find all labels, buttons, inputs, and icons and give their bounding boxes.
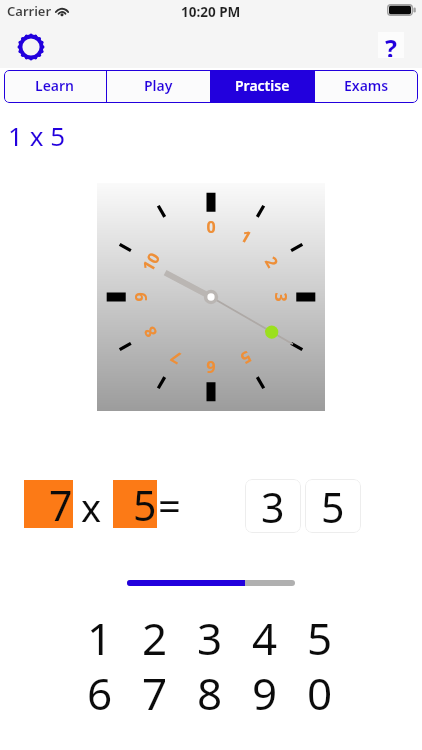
staticText: Play xyxy=(144,76,173,95)
staticText: 1 x 5 xyxy=(8,118,66,153)
staticText: 3 xyxy=(270,292,292,302)
button[interactable]: 3 xyxy=(245,479,301,533)
staticText: 5 xyxy=(236,346,256,370)
button[interactable]: 3 xyxy=(183,608,237,662)
staticText: 7 xyxy=(49,477,73,525)
staticText: 4 xyxy=(252,608,278,662)
staticText: 7 xyxy=(142,663,168,717)
staticText: ? xyxy=(385,31,397,57)
button[interactable]: Exams xyxy=(315,70,418,103)
staticText: 9 xyxy=(252,663,278,717)
button[interactable]: 9 xyxy=(238,663,292,717)
staticText: 2 xyxy=(142,608,168,662)
button[interactable]: 2 xyxy=(128,608,182,662)
staticText: 1 xyxy=(87,608,113,662)
staticText: 5 xyxy=(133,477,157,525)
staticText: 10 xyxy=(136,248,165,276)
button[interactable]: 5 xyxy=(293,608,347,662)
button[interactable]: 8 xyxy=(183,663,237,717)
staticText: 6 xyxy=(206,356,216,378)
button[interactable]: Practise xyxy=(211,70,314,103)
staticText: 6 xyxy=(87,663,113,717)
staticText: 10:20 PM xyxy=(181,3,241,21)
staticText: 3 xyxy=(261,479,285,533)
staticText: Carrier xyxy=(7,2,52,20)
button[interactable]: 0 xyxy=(293,663,347,717)
button[interactable]: Help xyxy=(378,32,404,58)
staticText: 3 xyxy=(197,608,223,662)
button[interactable]: 1 xyxy=(73,608,127,662)
staticText: 0 xyxy=(307,663,333,717)
staticText: 0 xyxy=(206,216,216,238)
staticText: 9 xyxy=(130,292,152,302)
staticText: x xyxy=(81,481,102,533)
staticText: 4 xyxy=(260,322,284,342)
staticText: 7 xyxy=(166,346,186,370)
staticText: 2 xyxy=(260,252,284,272)
button[interactable]: Learn xyxy=(4,70,106,103)
button[interactable]: 4 xyxy=(238,608,292,662)
staticText: Exams xyxy=(344,76,389,95)
button[interactable]: Play xyxy=(107,70,210,103)
staticText: 8 xyxy=(197,663,223,717)
button[interactable]: 6 xyxy=(73,663,127,717)
button[interactable]: 7 xyxy=(128,663,182,717)
staticText: 5 xyxy=(321,479,345,533)
button[interactable]: 5 xyxy=(305,479,361,533)
staticText: Practise xyxy=(235,76,290,95)
staticText: = xyxy=(158,478,181,532)
staticText: 8 xyxy=(138,322,162,342)
staticText: 5 xyxy=(307,608,333,662)
button[interactable]: Settings xyxy=(13,29,48,64)
staticText: Learn xyxy=(35,76,75,95)
staticText: 1 xyxy=(236,224,256,248)
